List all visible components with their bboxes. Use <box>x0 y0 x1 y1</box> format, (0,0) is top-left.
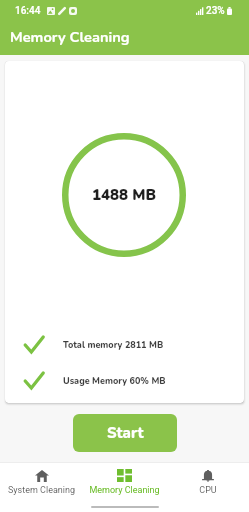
staticText: 23% <box>206 5 225 17</box>
button[interactable]: Memory Cleaning <box>83 463 166 501</box>
staticText: 1488 MB <box>92 185 157 205</box>
staticText: Total memory 2811 MB <box>63 339 164 351</box>
staticText: CPU <box>199 485 217 496</box>
staticText: Usage Memory 60% MB <box>63 375 166 387</box>
staticText: Start <box>107 423 144 443</box>
staticText: Memory Cleaning <box>89 485 160 496</box>
button[interactable]: System Cleaning <box>0 463 83 501</box>
button[interactable]: Start <box>73 414 177 452</box>
staticText: 16:44 <box>15 5 41 17</box>
button[interactable]: CPU <box>166 463 249 501</box>
staticText: Memory Cleaning <box>10 27 130 47</box>
staticText: System Cleaning <box>8 485 75 496</box>
